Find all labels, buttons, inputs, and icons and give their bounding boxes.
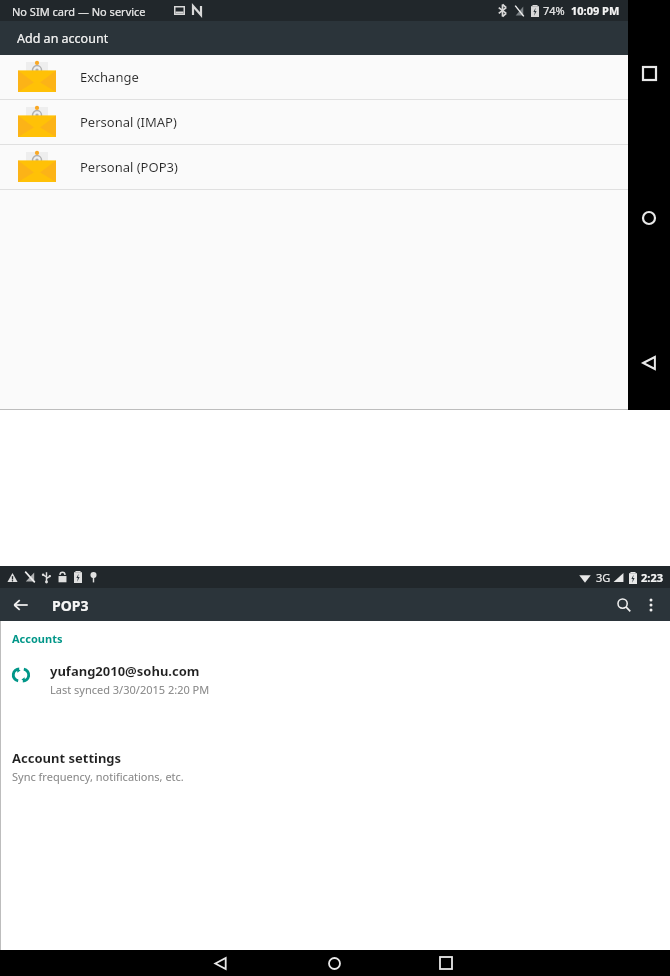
button[interactable]: Navigate up: [7, 591, 35, 619]
button[interactable]: Personal (POP3): [0, 145, 628, 189]
button[interactable]: yufang2010@sohu.com: [0, 660, 670, 705]
button[interactable]: Exchange: [0, 55, 628, 99]
button[interactable]: Recents: [634, 58, 664, 88]
button[interactable]: Back: [200, 950, 240, 976]
button[interactable]: Home: [634, 203, 664, 233]
staticText: yufang2010@sohu.com: [50, 662, 200, 680]
button[interactable]: Search: [610, 591, 638, 619]
staticText: Personal (POP3): [80, 158, 178, 176]
button[interactable]: Back: [634, 348, 664, 378]
button[interactable]: Recents: [426, 950, 466, 976]
staticText: POP3: [52, 596, 89, 615]
staticText: 74%: [543, 3, 565, 18]
staticText: Sync frequency, notifications, etc.: [12, 769, 184, 784]
staticText: No SIM card — No service: [12, 4, 146, 19]
staticText: 10:09 PM: [571, 3, 620, 18]
button[interactable]: Account settings: [0, 747, 670, 790]
staticText: Personal (IMAP): [80, 113, 177, 131]
staticText: 2:23: [641, 570, 663, 585]
button[interactable]: Personal (IMAP): [0, 100, 628, 144]
staticText: Accounts: [12, 631, 63, 646]
button[interactable]: More options: [638, 592, 664, 618]
staticText: Add an account: [17, 30, 109, 47]
staticText: Last synced 3/30/2015 2:20 PM: [50, 682, 210, 697]
button[interactable]: Home: [314, 950, 354, 976]
staticText: Account settings: [12, 749, 122, 767]
staticText: 3G: [596, 570, 611, 585]
staticText: Exchange: [80, 68, 139, 86]
